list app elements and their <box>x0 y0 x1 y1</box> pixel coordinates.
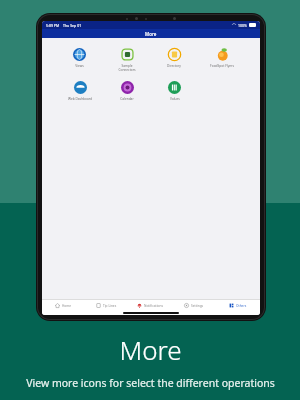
button[interactable]: Notifications <box>128 300 172 311</box>
staticText: 100% <box>238 23 247 28</box>
button[interactable]: Calendar <box>119 79 135 103</box>
staticText: Values <box>170 97 180 101</box>
staticText: Thu Sep 01 <box>63 23 82 28</box>
staticText: Directory <box>167 64 181 68</box>
button[interactable]: Views <box>72 46 87 70</box>
button[interactable]: FoodSpot Flyers <box>209 46 235 70</box>
staticText: More <box>145 31 157 37</box>
button[interactable]: Web Dashboard <box>67 79 93 103</box>
staticText: Web Dashboard <box>68 97 92 101</box>
button[interactable]: Others <box>216 300 260 311</box>
button[interactable]: Values <box>167 79 182 103</box>
staticText: Notifications <box>144 304 163 308</box>
staticText: Others <box>236 304 247 308</box>
staticText: Sample Connectors <box>118 64 136 72</box>
staticText: Tip Lines <box>103 304 117 308</box>
button[interactable]: Sample Connectors <box>117 46 137 74</box>
staticText: Views <box>75 64 84 68</box>
button[interactable]: Settings <box>172 300 216 311</box>
staticText: More <box>119 332 182 367</box>
staticText: View more icons for select the different… <box>26 376 275 390</box>
staticText: Settings <box>191 304 204 308</box>
staticText: 5:89 PM <box>46 23 60 28</box>
button[interactable]: Directory <box>166 46 182 70</box>
staticText: Calendar <box>120 97 134 101</box>
staticText: Home <box>62 304 72 308</box>
button[interactable]: Tip Lines <box>85 300 128 311</box>
button[interactable]: Home <box>42 300 85 311</box>
staticText: FoodSpot Flyers <box>210 64 234 68</box>
